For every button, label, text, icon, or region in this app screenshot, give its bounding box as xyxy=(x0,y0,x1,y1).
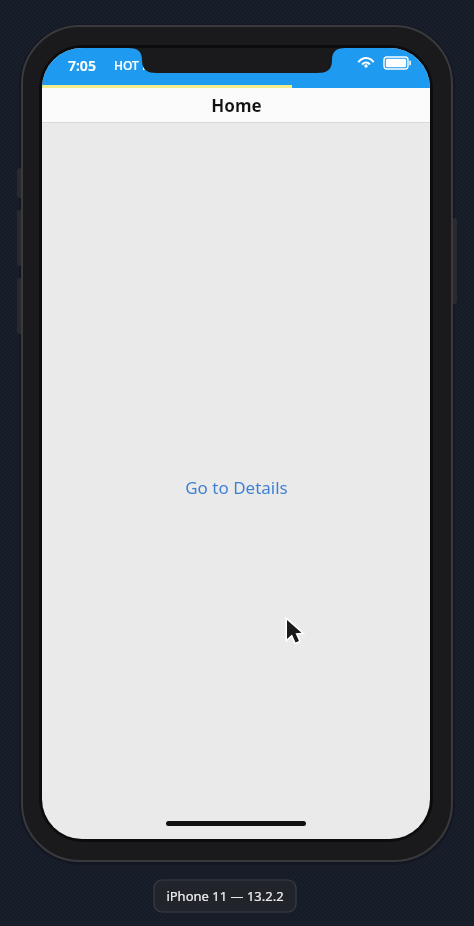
button[interactable]: Go to Details xyxy=(42,473,430,501)
staticText: iPhone 11 — 13.2.2 xyxy=(166,887,284,905)
button[interactable]: iPhone 11 — 13.2.2 xyxy=(154,880,296,912)
staticText: Home xyxy=(211,94,262,117)
staticText: 7:05 xyxy=(68,56,96,75)
staticText: HOT RELOADINGS xyxy=(114,57,218,73)
button[interactable]: Home xyxy=(42,88,430,122)
other: Home indicator xyxy=(166,821,306,826)
staticText: Go to Details xyxy=(185,476,288,499)
